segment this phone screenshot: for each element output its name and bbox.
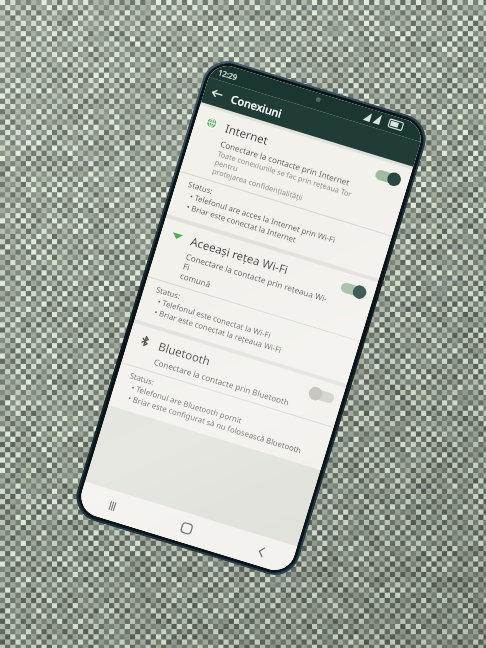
button[interactable]: Toggle on <box>339 280 368 300</box>
staticText: • Briar este conectat la Internet <box>185 202 298 246</box>
staticText: Internet <box>223 121 271 149</box>
button[interactable]: Home <box>173 515 200 542</box>
button[interactable]: Aceeași rețea Wi-Fi <box>135 218 378 384</box>
staticText: Status: <box>155 284 182 302</box>
staticText: • Briar este conectat la rețeaua Wi-Fi <box>153 307 283 356</box>
staticText: Conexiuni <box>229 91 284 121</box>
staticText: • Telefonul are acces la Internet prin W… <box>188 191 337 246</box>
staticText: • Briar este configurat să nu folosească… <box>127 393 303 456</box>
button[interactable]: Internet <box>167 105 412 279</box>
staticText: Conectare la contacte prin Internet <box>219 138 351 188</box>
button[interactable]: Bluetooth <box>108 323 346 470</box>
staticText: • Telefonul are Bluetooth pornit <box>130 382 244 427</box>
staticText: Status: <box>187 179 214 197</box>
button[interactable]: Back <box>201 78 231 108</box>
staticText: 12:29 <box>217 67 239 82</box>
staticText: Conectare la contacte prin rețeaua Wi-Fi… <box>179 251 332 324</box>
staticText: Bluetooth <box>156 339 213 370</box>
staticText: Status: <box>128 370 155 388</box>
staticText: Conectare la contacte prin Bluetooth <box>153 356 291 407</box>
staticText: • Telefonul este conectat la Wi-Fi <box>156 296 272 341</box>
button[interactable]: Back <box>247 537 275 565</box>
staticText: Aceeași rețea Wi-Fi <box>188 233 291 278</box>
button[interactable]: Toggle on <box>374 167 402 187</box>
button[interactable]: Toggle off <box>307 385 336 405</box>
button[interactable]: Recents <box>98 492 126 519</box>
staticText: Toate conexiunile se fac prin rețeaua To… <box>211 148 364 219</box>
